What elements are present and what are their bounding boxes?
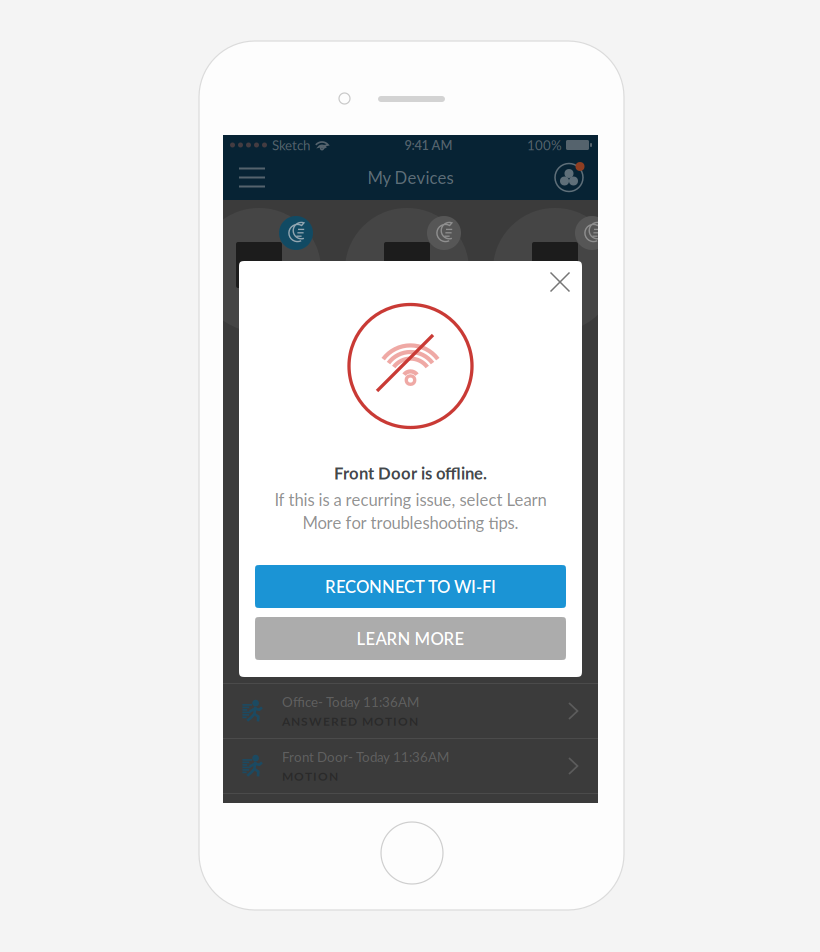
button[interactable]: Menu — [227, 155, 277, 200]
staticText: 100% — [527, 137, 562, 153]
button[interactable]: Status — [544, 155, 594, 200]
button[interactable]: LEARN MORE — [255, 617, 566, 660]
staticText: RECONNECT TO WI-FI — [325, 576, 496, 596]
staticText: Sketch — [272, 137, 310, 153]
staticText: LEARN MORE — [356, 628, 464, 648]
button[interactable]: Front Door- Today 11:36AM — [223, 739, 598, 793]
staticText: 9:41 AM — [404, 137, 452, 153]
staticText: More for troubleshooting tips. — [302, 512, 518, 532]
staticText: M O T I O N — [282, 769, 338, 783]
staticText: A N S W E R E D M O T I O N — [282, 714, 418, 728]
staticText: If this is a recurring issue, select Lea… — [274, 489, 546, 509]
button[interactable]: Close — [538, 261, 582, 303]
staticText: Office- Today 11:36AM — [282, 694, 419, 710]
staticText: My Devices — [367, 167, 453, 187]
staticText: Front Door is offline. — [334, 463, 487, 483]
staticText: Front Door- Today 11:36AM — [282, 749, 449, 765]
button[interactable]: RECONNECT TO WI-FI — [255, 565, 566, 608]
button[interactable]: Office- Today 11:36AM — [223, 684, 598, 738]
